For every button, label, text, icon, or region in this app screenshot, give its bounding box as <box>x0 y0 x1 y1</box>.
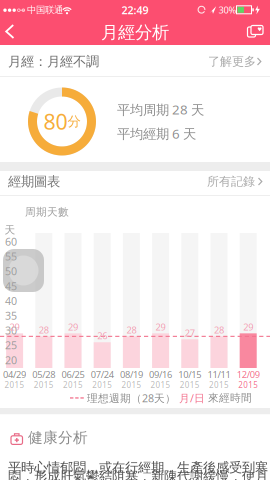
staticText: 了解更多 <box>208 54 256 69</box>
staticText: 2015 <box>121 380 141 390</box>
staticText: 月經分析 <box>101 22 169 43</box>
staticText: 月經：月經不調 <box>8 53 99 70</box>
staticText: 理想週期（28天） <box>87 391 176 405</box>
staticText: 2015 <box>92 380 112 390</box>
staticText: 天 <box>4 223 15 236</box>
staticText: 分 <box>67 113 80 130</box>
staticText: 35 <box>5 308 17 323</box>
staticText: 08/19 <box>120 368 143 381</box>
staticText: 健康分析 <box>28 428 88 446</box>
staticText: 50 <box>5 264 17 278</box>
button[interactable]: 所有記錄 <box>207 174 264 189</box>
staticText: 30 <box>5 323 17 337</box>
staticText: 20 <box>5 353 17 367</box>
staticText: 11/11 <box>207 368 230 381</box>
staticText: 26 <box>97 329 107 342</box>
staticText: 29 <box>68 321 78 333</box>
staticText: 平均周期 28 天 <box>117 100 204 118</box>
staticText: 40 <box>5 294 17 308</box>
staticText: 所有記錄 <box>207 174 255 189</box>
staticText: 45 <box>5 279 17 293</box>
staticText: 28 <box>214 324 224 336</box>
staticText: 來經時間 <box>208 391 252 404</box>
button[interactable] <box>243 24 267 39</box>
staticText: 29 <box>243 321 253 333</box>
staticText: 29 <box>10 321 20 333</box>
staticText: 06/25 <box>61 368 84 381</box>
staticText: 27 <box>185 327 195 339</box>
staticText: 平均經期 6 天 <box>117 125 196 142</box>
staticText: 28 <box>39 324 49 336</box>
staticText: 悶，形成肝氣鬱結阻塞，新陳代謝緩慢，使月經 <box>8 468 268 480</box>
staticText: 2015 <box>5 380 25 390</box>
staticText: 中国联通 <box>27 4 63 16</box>
staticText: 09/16 <box>149 368 172 381</box>
staticText: 04/29 <box>3 368 26 381</box>
staticText: 22:49 <box>121 3 148 17</box>
staticText: 80 <box>43 107 67 136</box>
staticText: 2015 <box>34 380 54 390</box>
staticText: 月/日 <box>179 391 205 405</box>
staticText: 29 <box>156 321 166 333</box>
staticText: 05/28 <box>32 368 55 381</box>
staticText: 25 <box>5 338 17 352</box>
staticText: 28 <box>126 324 136 336</box>
staticText: 10/15 <box>178 368 201 381</box>
staticText: 經期圖表 <box>8 173 60 190</box>
staticText: 2015 <box>180 380 200 390</box>
staticText: 60 <box>5 234 17 249</box>
button[interactable]: 月經：月經不調 <box>0 45 270 76</box>
button[interactable] <box>0 20 24 45</box>
staticText: 55 <box>5 249 17 263</box>
staticText: 2015 <box>238 380 258 390</box>
staticText: 2015 <box>151 380 171 390</box>
staticText: 30% <box>218 4 236 16</box>
staticText: 平時心情郁悶，或在行經期，生產後感受到寒 <box>8 459 268 476</box>
staticText: 周期天數 <box>25 205 69 218</box>
staticText: 2015 <box>209 380 229 390</box>
staticText: 12/09 <box>237 368 260 381</box>
staticText: 2015 <box>63 380 83 390</box>
staticText: 07/24 <box>91 368 114 381</box>
